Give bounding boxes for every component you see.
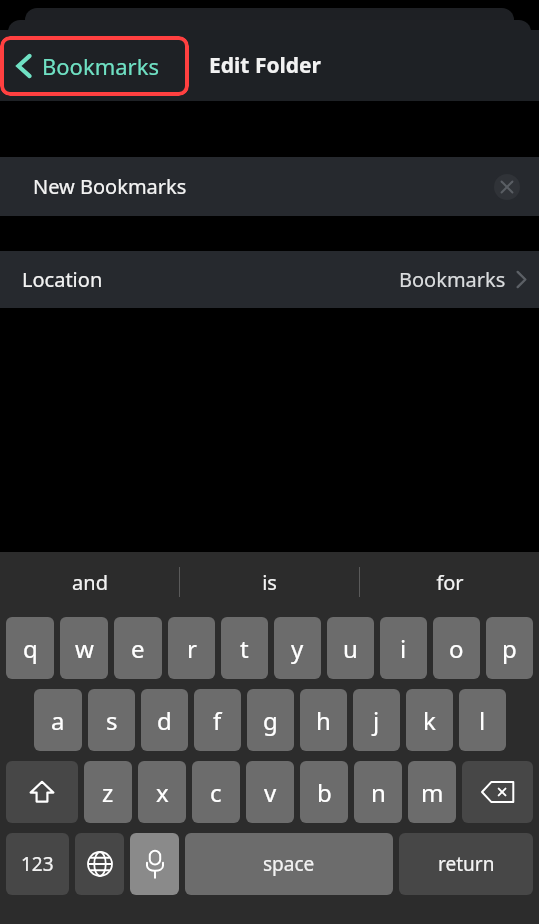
button[interactable]: a — [34, 689, 82, 751]
staticText: and — [72, 569, 108, 596]
button[interactable]: h — [300, 689, 347, 751]
staticText: for — [436, 569, 464, 596]
button[interactable]: New Bookmarks — [0, 157, 539, 216]
button[interactable]: Location — [0, 251, 539, 308]
button[interactable]: p — [486, 617, 533, 679]
staticText: space — [263, 851, 315, 877]
button[interactable]: Clear text — [494, 174, 520, 200]
button[interactable]: 123 — [6, 833, 69, 895]
button[interactable]: Backspace — [462, 761, 533, 823]
staticText: New Bookmarks — [33, 173, 187, 200]
button[interactable]: v — [246, 761, 294, 823]
button[interactable]: l — [459, 689, 506, 751]
button[interactable]: n — [354, 761, 402, 823]
button[interactable]: e — [114, 617, 162, 679]
staticText: c — [210, 776, 222, 809]
button[interactable]: z — [84, 761, 132, 823]
button[interactable]: c — [192, 761, 240, 823]
staticText: a — [51, 704, 65, 737]
staticText: y — [291, 632, 304, 665]
staticText: l — [479, 704, 486, 737]
staticText: d — [157, 704, 172, 737]
button[interactable]: f — [194, 689, 241, 751]
button[interactable]: for — [360, 552, 539, 612]
staticText: v — [264, 776, 277, 809]
staticText: p — [502, 632, 517, 665]
button[interactable]: u — [327, 617, 374, 679]
staticText: f — [213, 704, 222, 737]
staticText: Bookmarks — [399, 266, 506, 293]
staticText: is — [262, 569, 277, 596]
button[interactable]: w — [60, 617, 108, 679]
staticText: h — [316, 704, 331, 737]
staticText: s — [106, 704, 118, 737]
button[interactable]: k — [406, 689, 453, 751]
staticText: x — [156, 776, 169, 809]
button[interactable]: Next keyboard — [75, 833, 124, 895]
button[interactable]: j — [353, 689, 400, 751]
button[interactable]: g — [247, 689, 294, 751]
staticText: o — [449, 632, 464, 665]
staticText: k — [423, 704, 436, 737]
button[interactable]: o — [433, 617, 480, 679]
button[interactable]: and — [0, 552, 179, 612]
staticText: g — [263, 704, 278, 737]
button[interactable]: m — [408, 761, 456, 823]
staticText: z — [102, 776, 114, 809]
staticText: n — [371, 776, 386, 809]
button[interactable]: Shift — [6, 761, 78, 823]
staticText: e — [131, 632, 145, 665]
staticText: w — [75, 632, 94, 665]
button[interactable]: d — [141, 689, 188, 751]
button[interactable]: is — [180, 552, 359, 612]
button[interactable]: i — [380, 617, 427, 679]
staticText: Bookmarks — [42, 51, 159, 81]
staticText: b — [317, 776, 332, 809]
staticText: 123 — [21, 851, 54, 877]
staticText: Edit Folder — [209, 51, 321, 80]
button[interactable]: Dictate — [130, 833, 179, 895]
button[interactable]: x — [138, 761, 186, 823]
button[interactable]: t — [221, 617, 268, 679]
button[interactable]: r — [168, 617, 215, 679]
staticText: u — [343, 632, 358, 665]
button[interactable]: b — [300, 761, 348, 823]
button[interactable]: return — [399, 833, 533, 895]
staticText: m — [421, 776, 444, 809]
staticText: return — [438, 851, 495, 877]
button[interactable]: space — [185, 833, 393, 895]
staticText: Location — [22, 266, 103, 293]
staticText: q — [23, 632, 38, 665]
staticText: r — [187, 632, 197, 665]
staticText: j — [373, 704, 380, 737]
button[interactable]: q — [6, 617, 54, 679]
staticText: i — [400, 632, 407, 665]
button[interactable]: Bookmarks — [0, 36, 189, 96]
staticText: t — [240, 632, 249, 665]
button[interactable]: y — [274, 617, 321, 679]
button[interactable]: s — [88, 689, 135, 751]
